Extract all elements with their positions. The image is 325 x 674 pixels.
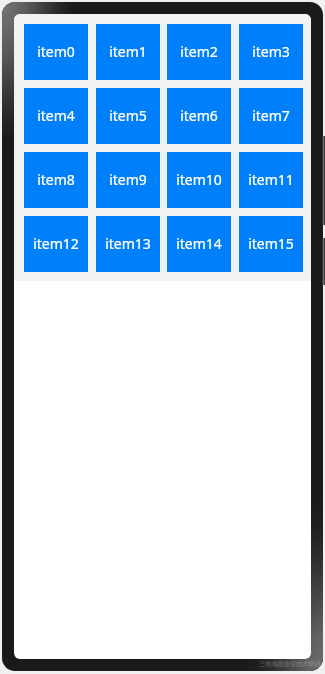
- staticText: item7: [252, 106, 290, 125]
- button[interactable]: item9: [96, 152, 160, 208]
- button[interactable]: item8: [24, 152, 88, 208]
- staticText: item13: [105, 234, 151, 253]
- button[interactable]: item15: [239, 216, 303, 272]
- button[interactable]: item10: [167, 152, 231, 208]
- staticText: item0: [37, 42, 75, 61]
- staticText: item14: [176, 234, 222, 253]
- button[interactable]: item0: [24, 24, 88, 80]
- button[interactable]: item2: [167, 24, 231, 80]
- staticText: item4: [37, 106, 75, 125]
- staticText: item15: [248, 234, 294, 253]
- button[interactable]: item4: [24, 88, 88, 144]
- button[interactable]: item1: [96, 24, 160, 80]
- button[interactable]: item7: [239, 88, 303, 144]
- staticText: item8: [37, 170, 75, 189]
- staticText: item10: [176, 170, 222, 189]
- button[interactable]: item11: [239, 152, 303, 208]
- staticText: item1: [109, 42, 147, 61]
- staticText: item9: [109, 170, 147, 189]
- button[interactable]: item14: [167, 216, 231, 272]
- staticText: item12: [33, 234, 79, 253]
- staticText: item6: [180, 106, 218, 125]
- button[interactable]: item13: [96, 216, 160, 272]
- staticText: 三维地图会议技术研讨: [259, 660, 321, 668]
- button[interactable]: item3: [239, 24, 303, 80]
- staticText: item11: [248, 170, 294, 189]
- staticText: item3: [252, 42, 290, 61]
- button[interactable]: item5: [96, 88, 160, 144]
- staticText: item5: [109, 106, 147, 125]
- staticText: item2: [180, 42, 218, 61]
- button[interactable]: item12: [24, 216, 88, 272]
- button[interactable]: item6: [167, 88, 231, 144]
